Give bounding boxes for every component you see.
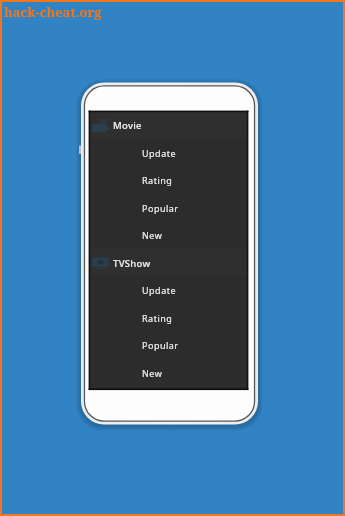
staticText: Movie: [113, 119, 142, 132]
button[interactable]: New: [90, 221, 247, 249]
button[interactable]: Rating: [90, 166, 247, 194]
button[interactable]: TV show: [90, 249, 247, 277]
staticText: Update: [142, 284, 177, 296]
button[interactable]: Popular: [90, 331, 247, 359]
staticText: TVShow: [113, 257, 151, 270]
staticText: New: [142, 367, 163, 379]
staticText: Rating: [142, 312, 173, 324]
button[interactable]: Movie: [90, 112, 247, 139]
staticText: hack-cheat.org: [4, 3, 102, 21]
staticText: New: [142, 229, 163, 241]
button[interactable]: Update: [90, 139, 247, 167]
button[interactable]: New: [90, 359, 247, 387]
staticText: Rating: [142, 174, 173, 186]
button[interactable]: Update: [90, 276, 247, 304]
staticText: Popular: [142, 339, 179, 351]
staticText: Popular: [142, 202, 179, 214]
other: Movie: [91, 118, 112, 133]
other: TV show: [91, 256, 112, 271]
staticText: Update: [142, 147, 177, 159]
button[interactable]: Rating: [90, 304, 247, 332]
button[interactable]: Popular: [90, 194, 247, 222]
